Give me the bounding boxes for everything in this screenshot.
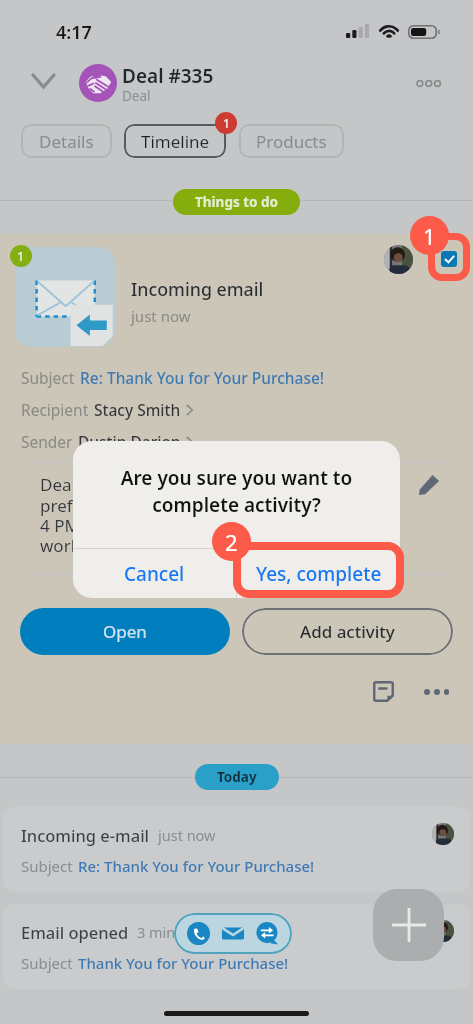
staticText: Incoming email: [131, 277, 264, 301]
staticText: Products: [256, 130, 327, 153]
staticText: 3 min: [137, 922, 176, 942]
staticText: Dustin Darion: [78, 431, 181, 452]
button[interactable]: [3, 904, 470, 989]
button[interactable]: Add: [373, 889, 444, 961]
staticText: Details: [39, 130, 94, 153]
button[interactable]: Quick actions: [174, 913, 292, 954]
button[interactable]: Note: [373, 681, 394, 702]
staticText: Subject: [21, 367, 75, 388]
staticText: Re: Thank You for Your Purchase!: [80, 367, 325, 388]
staticText: 1: [423, 221, 436, 251]
button[interactable]: Yes, complete: [237, 549, 400, 598]
staticText: just now: [158, 825, 216, 845]
button[interactable]: Things to do: [173, 189, 300, 215]
button[interactable]: Today: [195, 764, 279, 790]
button[interactable]: Details: [21, 124, 112, 158]
button[interactable]: Edit: [414, 470, 444, 500]
button[interactable]: More options: [412, 71, 442, 96]
staticText: Things to do: [195, 193, 278, 211]
staticText: Incoming e-mail: [21, 824, 150, 846]
staticText: Sender: [21, 431, 73, 452]
button[interactable]: More actions: [424, 681, 449, 702]
staticText: Deal #335: [122, 63, 214, 89]
staticText: Today: [217, 768, 257, 786]
staticText: Stacy Smith: [94, 399, 181, 420]
staticText: 1: [223, 115, 230, 131]
staticText: 2: [225, 527, 238, 557]
button[interactable]: Complete activity: [441, 251, 457, 267]
button[interactable]: Subject: [21, 367, 325, 388]
staticText: Yes, complete: [256, 561, 382, 587]
staticText: Dear Stacy, I would prefer to call at 4 …: [40, 473, 193, 557]
staticText: Recipient: [21, 399, 89, 420]
button[interactable]: Timeline: [124, 124, 226, 158]
staticText: Cancel: [124, 561, 185, 587]
staticText: Open: [103, 620, 147, 643]
staticText: Are you sure you want to complete activi…: [73, 465, 400, 518]
staticText: Re: Thank You for Your Purchase!: [78, 856, 315, 876]
staticText: Email opened: [21, 921, 129, 943]
button[interactable]: Sender: [21, 431, 193, 452]
button[interactable]: Add activity: [242, 608, 453, 655]
button[interactable]: Open: [20, 608, 230, 655]
button[interactable]: Collapse: [26, 64, 60, 98]
staticText: 1: [17, 248, 25, 265]
staticText: Timeline: [141, 130, 210, 153]
button[interactable]: Products: [239, 124, 344, 158]
staticText: just now: [131, 306, 191, 326]
staticText: Thank You for Your Purchase!: [78, 953, 289, 973]
staticText: Add activity: [300, 620, 395, 643]
staticText: Subject: [21, 856, 73, 876]
button[interactable]: Recipient: [21, 399, 193, 420]
staticText: 4:17: [56, 20, 92, 45]
button[interactable]: Cancel: [73, 549, 236, 598]
button[interactable]: [3, 807, 470, 892]
staticText: Deal: [122, 87, 151, 105]
staticText: Subject: [21, 953, 73, 973]
